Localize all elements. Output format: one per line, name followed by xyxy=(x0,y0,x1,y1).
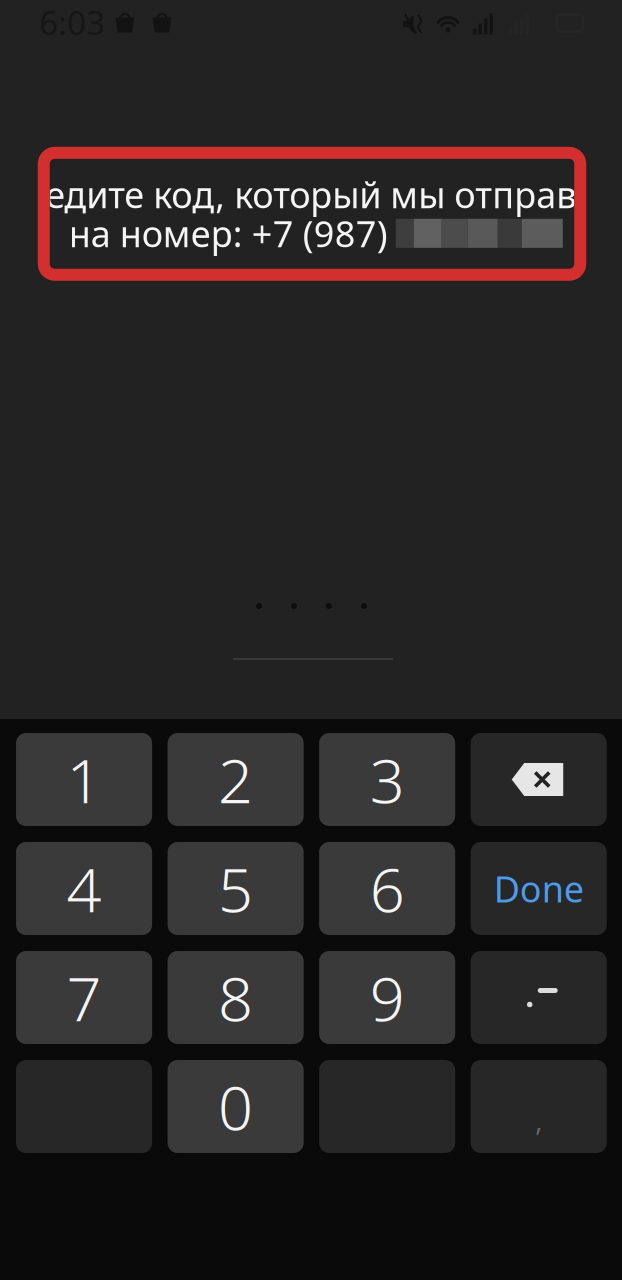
staticText: Введите код, который мы отправили xyxy=(2,170,622,218)
button[interactable]: 9 xyxy=(319,951,455,1044)
button[interactable]: Delete xyxy=(471,733,607,826)
button[interactable]: 2 xyxy=(168,733,304,826)
button[interactable]: 5 xyxy=(168,842,304,935)
button[interactable]: 0 xyxy=(168,1060,304,1153)
button[interactable]: Dot dash xyxy=(471,951,607,1044)
button[interactable]: 1 xyxy=(16,733,152,826)
staticText: 6:03 xyxy=(39,0,105,44)
staticText: , xyxy=(535,1103,542,1138)
button[interactable]: 6 xyxy=(319,842,455,935)
staticText: 2 xyxy=(218,739,253,820)
staticText: 4 xyxy=(67,848,102,929)
staticText: 3 xyxy=(370,739,405,820)
staticText: 5 xyxy=(218,848,253,929)
staticText: 7 xyxy=(67,957,102,1038)
staticText: 8 xyxy=(218,957,253,1038)
staticText: 6 xyxy=(370,848,405,929)
staticText: на номер: +7 (987) xyxy=(69,209,388,257)
button[interactable]: 8 xyxy=(168,951,304,1044)
staticText: 1 xyxy=(67,739,102,820)
staticText: 9 xyxy=(370,957,405,1038)
button[interactable]: 7 xyxy=(16,951,152,1044)
button[interactable]: Comma xyxy=(471,1060,607,1153)
button[interactable]: 3 xyxy=(319,733,455,826)
staticText: 0 xyxy=(218,1066,253,1147)
staticText: Done xyxy=(494,865,584,912)
button[interactable]: Done xyxy=(471,842,607,935)
button[interactable]: 4 xyxy=(16,842,152,935)
